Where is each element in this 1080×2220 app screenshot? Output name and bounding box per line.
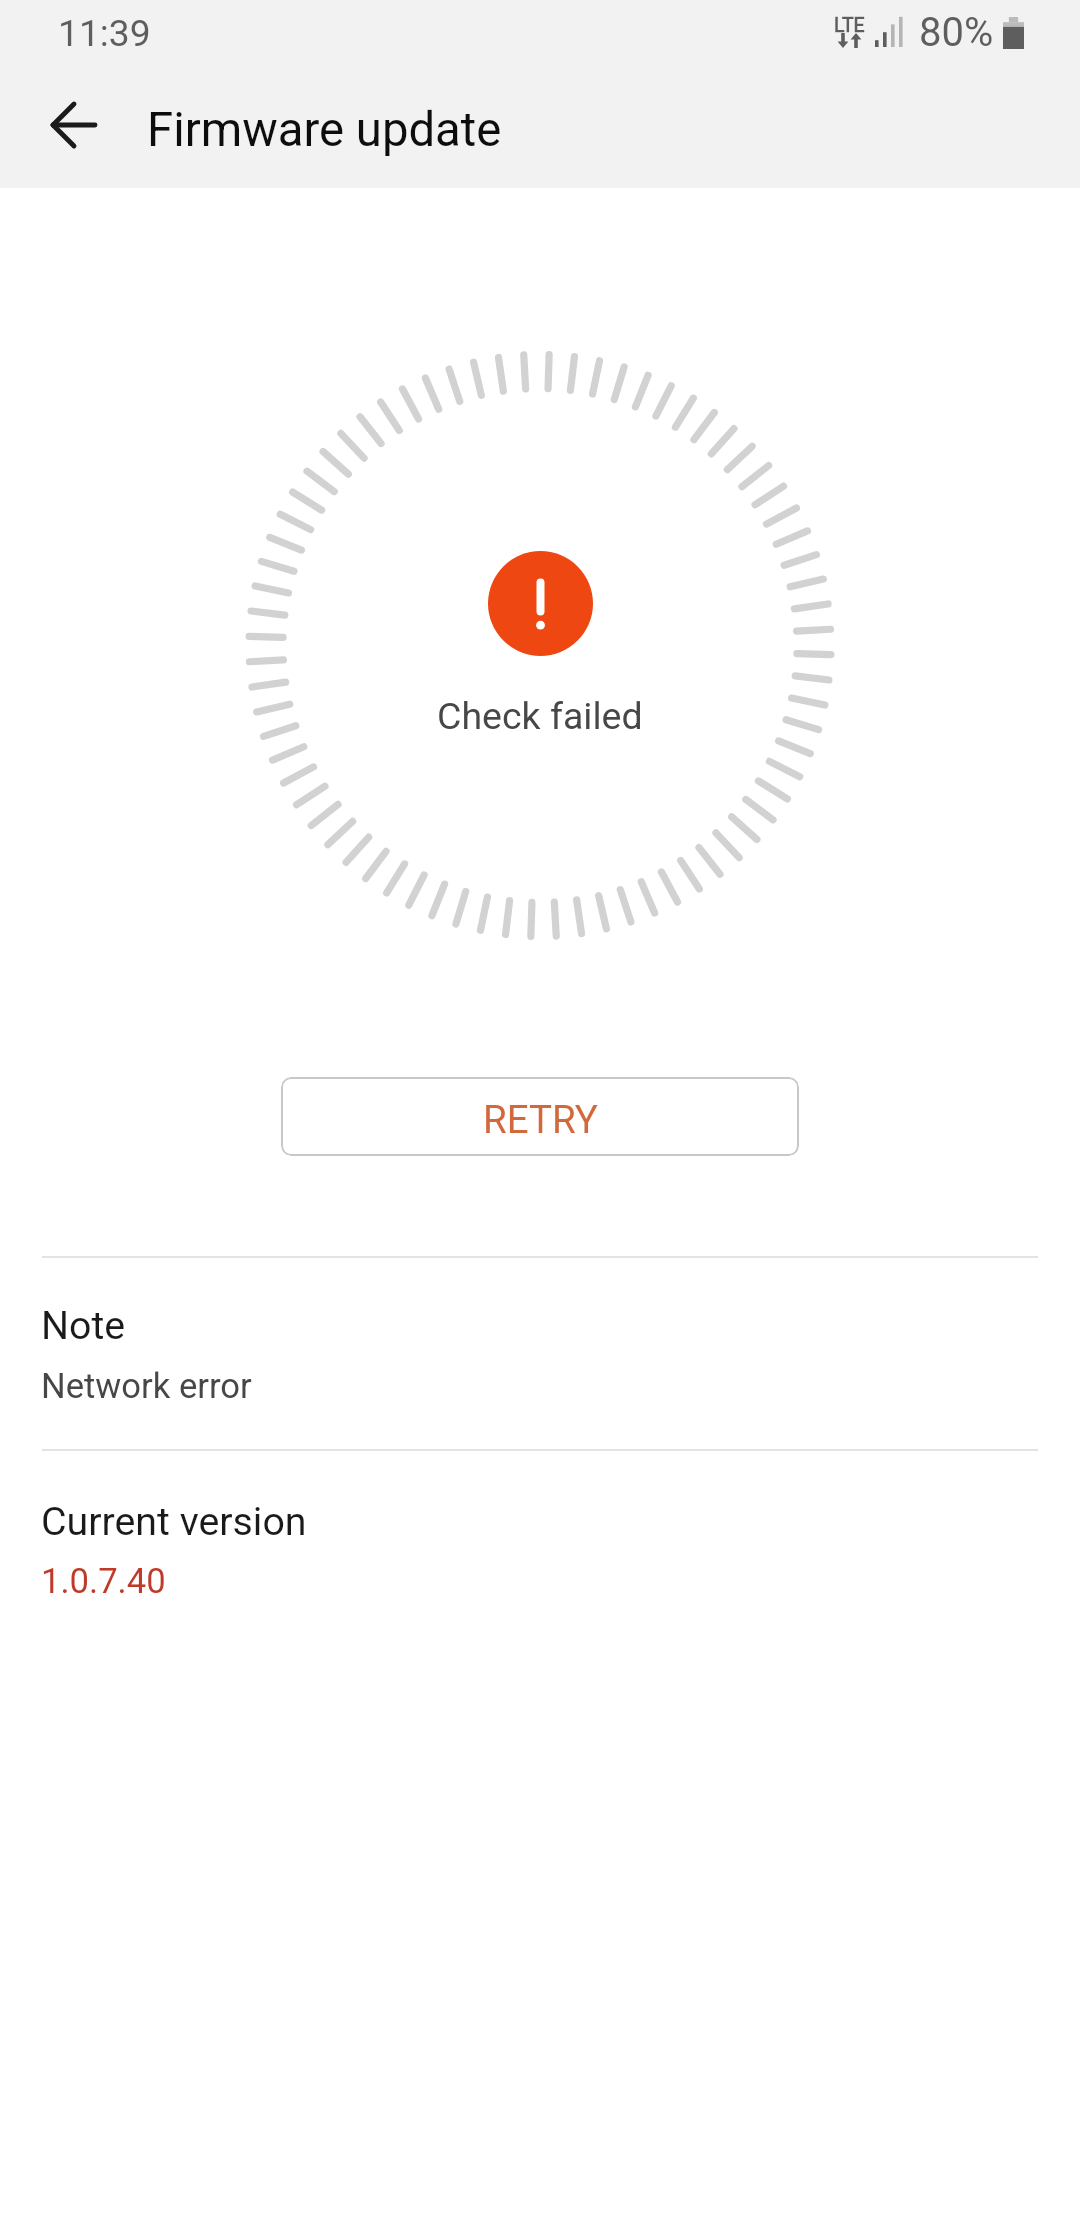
staticText: Network error: [41, 1366, 252, 1407]
staticText: 1.0.7.40: [41, 1561, 166, 1602]
staticText: Current version: [41, 1499, 307, 1545]
button[interactable]: RETRY: [281, 1077, 799, 1156]
staticText: 80%: [919, 9, 994, 56]
staticText: 11:39: [58, 11, 151, 55]
staticText: LTE: [834, 14, 865, 37]
staticText: Firmware update: [147, 102, 502, 157]
button[interactable]: Note: [0, 1256, 1080, 1449]
staticText: Note: [41, 1303, 126, 1349]
button[interactable]: Current version: [0, 1449, 1080, 1649]
staticText: Check failed: [437, 694, 643, 738]
staticText: RETRY: [483, 1097, 598, 1142]
button[interactable]: Back: [28, 79, 120, 171]
